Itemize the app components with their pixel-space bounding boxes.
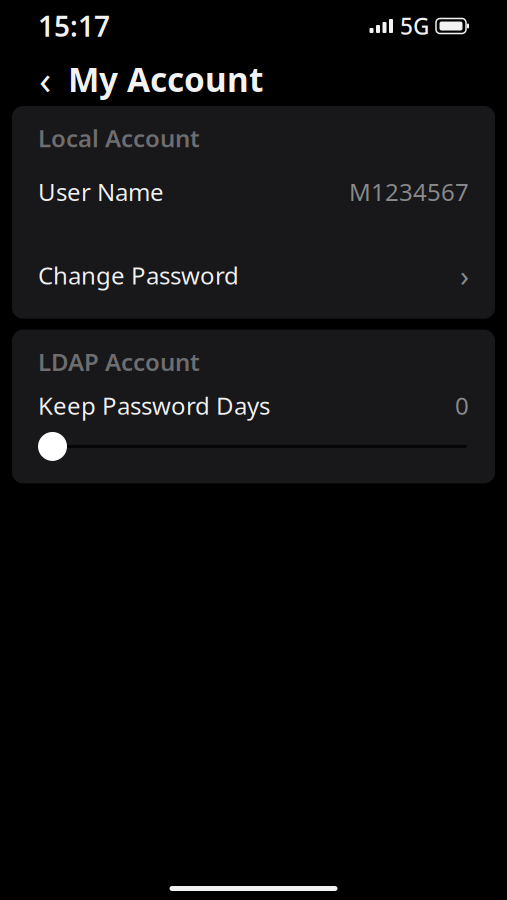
staticText: My Account [68,57,263,101]
staticText: 5G [400,11,429,41]
staticText: Keep Password Days [38,390,270,421]
button[interactable]: Keep Password Days slider [38,431,469,461]
staticText: › [460,256,469,295]
staticText: User Name [38,176,164,208]
staticText: 15:17 [38,7,110,45]
staticText: Change Password [38,259,239,291]
staticText: Local Account [38,122,200,154]
staticText: ‹ [39,52,51,105]
button[interactable]: Change Password [38,256,469,319]
staticText: 0 [455,390,469,421]
staticText: M1234567 [349,176,469,208]
button[interactable]: Back [28,59,62,99]
staticText: LDAP Account [38,346,200,378]
